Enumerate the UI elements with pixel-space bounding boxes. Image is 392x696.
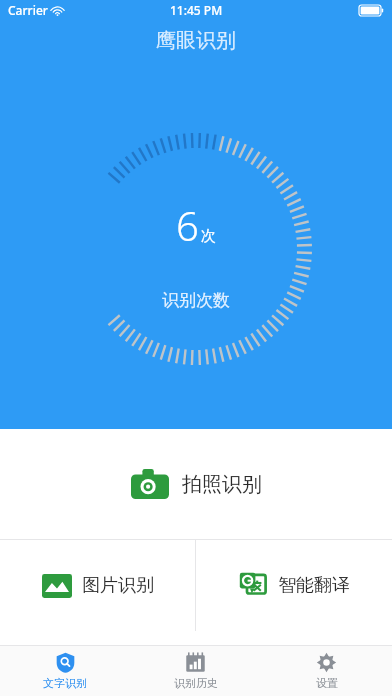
staticText: 11:45 PM — [170, 2, 223, 18]
staticText: 设置 — [316, 676, 338, 690]
staticText: 文字识别 — [43, 676, 87, 690]
staticText: 识别历史 — [174, 676, 218, 690]
staticText: Carrier — [8, 2, 48, 18]
button[interactable]: 智能翻译 — [196, 540, 392, 631]
staticText: 图片识别 — [82, 574, 154, 597]
button[interactable]: 设置 — [261, 646, 392, 696]
staticText: 6 — [176, 198, 199, 252]
staticText: 识别次数 — [162, 290, 230, 311]
staticText: 智能翻译 — [278, 574, 350, 597]
button[interactable]: 图片识别 — [0, 540, 195, 631]
staticText: 鹰眼识别 — [156, 28, 236, 53]
staticText: 次 — [201, 227, 216, 246]
button[interactable]: 文字识别 — [0, 646, 130, 696]
button[interactable]: 识别历史 — [130, 646, 261, 696]
button[interactable]: 拍照识别 — [0, 429, 392, 539]
staticText: 拍照识别 — [182, 472, 262, 497]
